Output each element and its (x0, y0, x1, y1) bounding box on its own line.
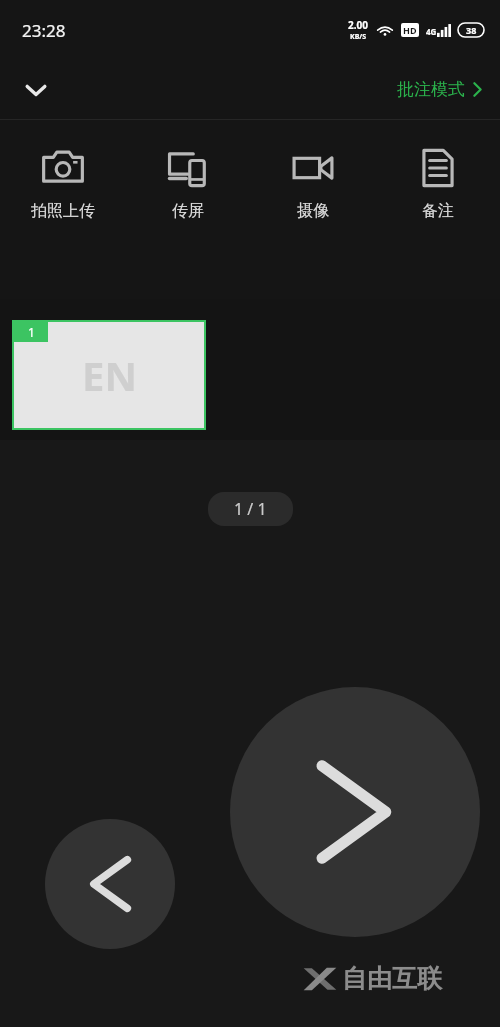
staticText: 拍照上传 (31, 201, 95, 221)
staticText: 自由互联 (342, 963, 442, 994)
staticText: 批注模式 (397, 79, 465, 100)
staticText: 备注 (422, 201, 454, 221)
staticText: 摄像 (297, 201, 329, 221)
staticText: 2.00 (348, 18, 368, 32)
staticText: 1 (28, 324, 35, 340)
staticText: 1 / 1 (234, 498, 267, 520)
staticText: EN (82, 348, 137, 402)
button[interactable]: Collapse (12, 66, 60, 114)
staticText: KB/S (350, 32, 367, 42)
button[interactable]: EN (12, 320, 206, 430)
button[interactable]: 摄像 (261, 142, 365, 225)
button[interactable]: 备注 (386, 142, 490, 225)
button[interactable]: 传屏 (136, 142, 240, 225)
staticText: 23:28 (22, 19, 66, 42)
button[interactable]: 拍照上传 (11, 142, 115, 225)
staticText: 4G (426, 26, 437, 37)
staticText: 传屏 (172, 201, 204, 221)
button[interactable]: 1 / 1 (208, 492, 293, 526)
staticText: HD (403, 24, 417, 36)
button[interactable]: Next slide (230, 687, 480, 937)
button[interactable]: Previous slide (45, 819, 175, 949)
staticText: 38 (466, 24, 477, 36)
button[interactable]: 批注模式 (393, 73, 486, 106)
